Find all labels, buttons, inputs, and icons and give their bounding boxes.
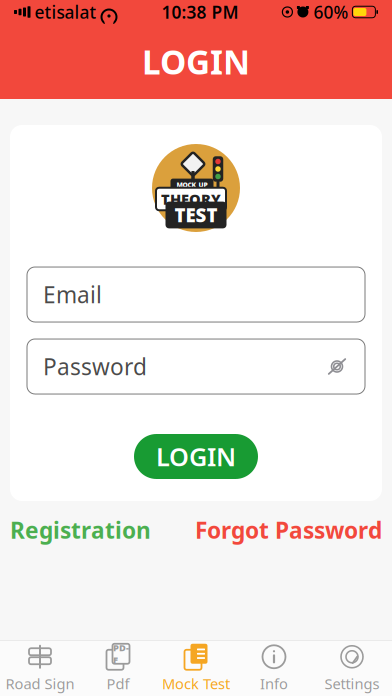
button[interactable]: Road Sign xyxy=(1,641,79,696)
staticText: TEST xyxy=(174,203,217,227)
staticText: THEORY xyxy=(161,189,221,209)
staticText: Info xyxy=(260,674,288,693)
staticText: Pdf xyxy=(106,674,129,693)
staticText: 60% xyxy=(313,0,348,23)
staticText: MOCK UP xyxy=(176,181,207,189)
button[interactable]: Forgot Password xyxy=(195,515,382,545)
staticText: Password xyxy=(43,351,147,381)
staticText: LOGIN xyxy=(156,440,236,473)
button[interactable]: PDF xyxy=(79,641,157,696)
staticText: Email xyxy=(43,279,102,309)
staticText: Road Sign xyxy=(5,674,74,693)
staticText: 10:38 PM xyxy=(161,0,238,23)
button[interactable]: Mock Test xyxy=(157,641,235,696)
button[interactable]: Settings xyxy=(313,641,391,696)
staticText: Mock Test xyxy=(162,674,230,693)
button[interactable]: LOGIN xyxy=(134,434,258,479)
staticText: LOGIN xyxy=(142,39,250,84)
button[interactable]: Registration xyxy=(10,515,151,545)
staticText: Forgot Password xyxy=(195,515,382,545)
staticText: Settings xyxy=(324,674,379,693)
staticText: etisalat xyxy=(34,0,96,23)
staticText: Registration xyxy=(10,515,151,545)
staticText: PDF xyxy=(113,641,129,666)
button[interactable]: Info xyxy=(235,641,313,696)
